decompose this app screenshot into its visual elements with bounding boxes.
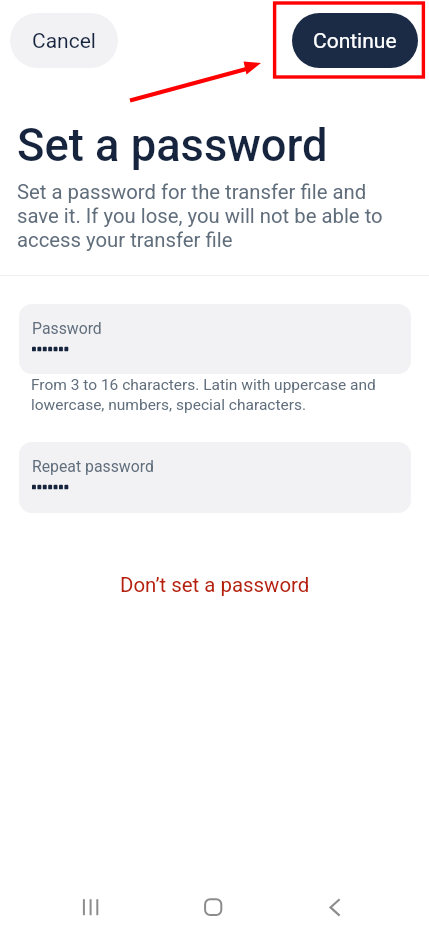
button[interactable]: Don’t set a password bbox=[106, 567, 324, 603]
button[interactable]: Password bbox=[19, 304, 411, 374]
button[interactable]: Repeat password bbox=[19, 442, 411, 513]
button[interactable]: Cancel bbox=[10, 13, 118, 68]
staticText: Cancel bbox=[32, 29, 96, 54]
button[interactable]: Back bbox=[292, 878, 378, 932]
button[interactable]: Home bbox=[170, 878, 256, 932]
staticText: Repeat password bbox=[32, 457, 154, 476]
staticText: Don’t set a password bbox=[120, 573, 310, 597]
button[interactable]: Continue bbox=[292, 13, 418, 68]
staticText: Continue bbox=[313, 29, 397, 54]
button[interactable]: Recent apps bbox=[48, 878, 134, 932]
staticText: From 3 to 16 characters. Latin with uppe… bbox=[31, 376, 379, 413]
staticText: Password bbox=[32, 319, 102, 338]
staticText: Set a password bbox=[17, 119, 328, 172]
staticText: Set a password for the transfer file and… bbox=[17, 180, 397, 252]
